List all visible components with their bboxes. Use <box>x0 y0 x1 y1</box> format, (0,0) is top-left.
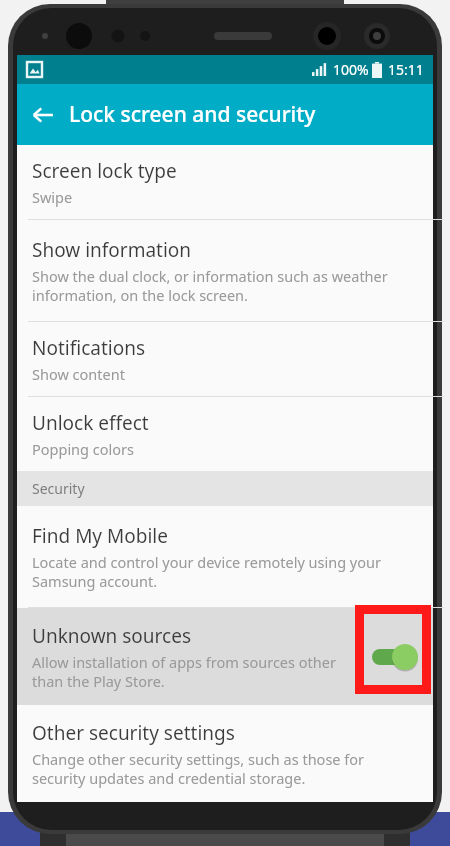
button[interactable]: Screen lock type <box>17 145 433 219</box>
staticText: 15:11 <box>388 60 424 79</box>
button[interactable]: Find My Mobile <box>17 506 433 607</box>
staticText: Lock screen and security <box>69 100 316 129</box>
staticText: Swipe <box>32 187 73 207</box>
staticText: Other security settings <box>32 720 235 746</box>
button[interactable]: Notifications <box>17 322 433 396</box>
staticText: Unknown sources <box>32 623 191 649</box>
staticText: Screen lock type <box>32 158 177 184</box>
button[interactable]: Back <box>17 89 69 141</box>
staticText: Show content <box>32 364 125 384</box>
staticText: Unlock effect <box>32 410 149 436</box>
staticText: 100% <box>333 60 369 79</box>
button[interactable]: Unknown sources toggle <box>357 612 433 701</box>
staticText: Notifications <box>32 335 146 361</box>
staticText: Show the dual clock, or information such… <box>32 266 388 305</box>
staticText: Allow installation of apps from sources … <box>32 652 336 691</box>
staticText: Change other security settings, such as … <box>32 749 365 788</box>
staticText: Security <box>32 479 85 498</box>
staticText: Find My Mobile <box>32 523 168 549</box>
button[interactable]: Unlock effect <box>17 397 433 471</box>
staticText: Locate and control your device remotely … <box>32 552 381 591</box>
button[interactable]: Other security settings <box>17 705 433 802</box>
staticText: Show information <box>32 237 192 263</box>
button[interactable]: Unknown sources <box>17 608 433 705</box>
staticText: Popping colors <box>32 439 134 459</box>
button[interactable]: Show information <box>17 220 433 321</box>
